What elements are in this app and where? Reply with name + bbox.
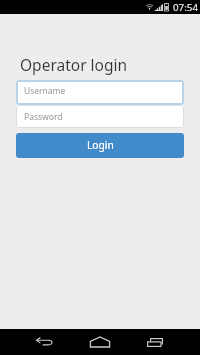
button[interactable]: Username (16, 80, 184, 105)
button[interactable]: Home (86, 329, 114, 355)
button[interactable]: Recent apps (141, 329, 169, 355)
staticText: Username (24, 85, 66, 97)
staticText: Operator login (20, 54, 128, 75)
button[interactable]: Password (16, 105, 184, 128)
staticText: 07:54 (173, 1, 199, 14)
staticText: Login (87, 138, 114, 152)
button[interactable]: Login (16, 133, 184, 158)
button[interactable]: Back (30, 329, 58, 355)
staticText: Password (24, 111, 63, 123)
